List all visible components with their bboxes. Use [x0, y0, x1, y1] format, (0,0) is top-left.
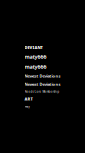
staticText: Maty	[24, 105, 29, 108]
staticText: Needs Core Membership	[24, 90, 59, 93]
staticText: Newest Deviations	[24, 73, 60, 78]
staticText: ART	[24, 96, 32, 102]
staticText: maty666	[24, 63, 46, 70]
staticText: maty666	[24, 53, 46, 60]
staticText: DEVIANT	[24, 45, 42, 50]
staticText: Newest Deviations	[24, 81, 60, 87]
